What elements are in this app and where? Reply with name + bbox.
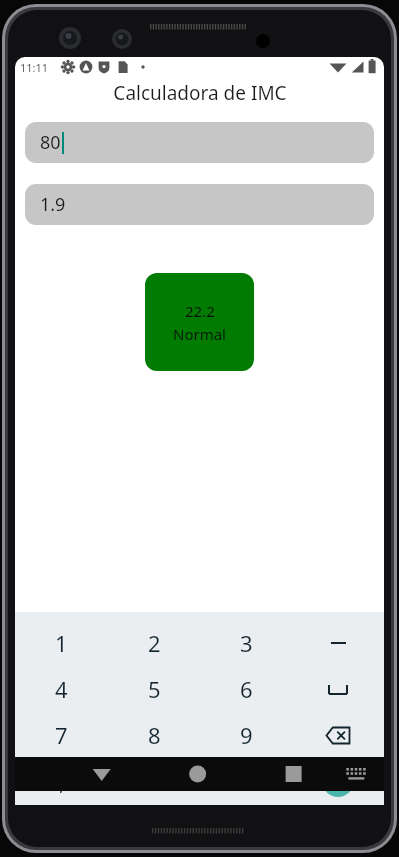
staticText: 1.9 bbox=[40, 192, 66, 217]
button[interactable]: , bbox=[15, 758, 108, 804]
staticText: 7 bbox=[55, 720, 68, 750]
button[interactable]: Minus bbox=[292, 620, 384, 666]
staticText: 9 bbox=[240, 720, 253, 750]
button[interactable]: 8 bbox=[108, 712, 200, 758]
button[interactable] bbox=[15, 757, 384, 791]
staticText: 0 bbox=[148, 766, 161, 796]
staticText: 5 bbox=[148, 674, 161, 704]
button[interactable]: 9 bbox=[200, 712, 292, 758]
staticText: 3 bbox=[240, 628, 253, 658]
staticText: 1 bbox=[55, 628, 68, 658]
staticText: 22.2 bbox=[185, 301, 215, 321]
button[interactable]: 0 bbox=[108, 758, 200, 804]
button[interactable]: Backspace bbox=[292, 712, 384, 758]
button[interactable]: Enter bbox=[292, 758, 384, 804]
button[interactable]: 5 bbox=[108, 666, 200, 712]
staticText: Normal bbox=[173, 324, 226, 344]
staticText: Calculadora de IMC bbox=[113, 80, 287, 106]
button[interactable]: 7 bbox=[15, 712, 108, 758]
button[interactable]: 4 bbox=[15, 666, 108, 712]
staticText: . bbox=[243, 766, 249, 796]
button[interactable]: . bbox=[200, 758, 292, 804]
staticText: 6 bbox=[240, 674, 253, 704]
staticText: , bbox=[59, 766, 65, 796]
button[interactable]: 2 bbox=[108, 620, 200, 666]
staticText: 8 bbox=[148, 720, 161, 750]
button[interactable]: 22.2 bbox=[145, 273, 254, 371]
button[interactable]: 3 bbox=[200, 620, 292, 666]
button[interactable]: 1 bbox=[15, 620, 108, 666]
button[interactable]: 80 bbox=[25, 122, 374, 163]
button[interactable]: 6 bbox=[200, 666, 292, 712]
button[interactable]: 1.9 bbox=[25, 184, 374, 225]
button[interactable]: Space bbox=[292, 666, 384, 712]
staticText: 11:11 bbox=[20, 60, 49, 75]
staticText: 2 bbox=[148, 628, 161, 658]
staticText: 4 bbox=[55, 674, 68, 704]
staticText: 80 bbox=[40, 130, 61, 155]
